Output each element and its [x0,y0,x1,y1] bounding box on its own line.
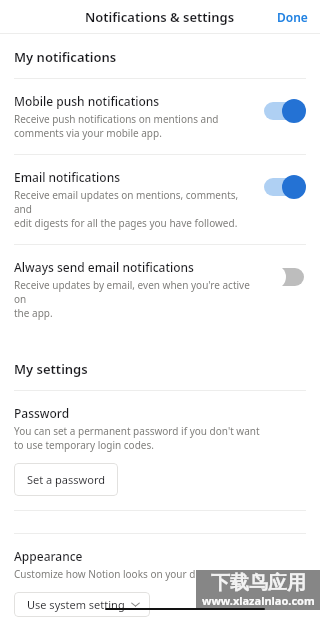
button[interactable]: Use system setting [14,592,150,617]
staticText: Receive push notifications on mentions a… [14,112,219,140]
staticText: Customize how Notion looks on your devic… [14,567,222,581]
button[interactable]: Email notifications [0,155,320,244]
staticText: Appearance [14,548,83,564]
staticText: 下载鸟应用 [211,571,306,595]
staticText: Use system setting [27,597,125,612]
button[interactable]: Mobile push notifications [0,79,320,154]
staticText: Set a password [27,472,105,487]
staticText: Done [277,9,308,25]
button[interactable]: Always send email notifications [262,265,306,289]
staticText: www.xlazalnlao.com [202,593,315,608]
staticText: My settings [14,360,88,378]
staticText: My notifications [14,48,117,66]
staticText: Notifications & settings [85,8,235,26]
button[interactable]: Always send email notifications [0,245,320,334]
button[interactable]: Done [265,3,320,31]
staticText: Email notifications [14,169,120,185]
staticText: Receive email updates on mentions, comme… [14,188,252,230]
staticText: Always send email notifications [14,259,194,275]
button[interactable]: Set a password [14,463,118,496]
staticText: Password [14,405,70,421]
staticText: Receive updates by email, even when you'… [14,278,252,320]
button[interactable]: Email notifications [262,175,306,199]
staticText: You can set a permanent password if you … [14,424,260,452]
button[interactable]: Mobile push notifications [262,99,306,123]
staticText: Mobile push notifications [14,93,160,109]
